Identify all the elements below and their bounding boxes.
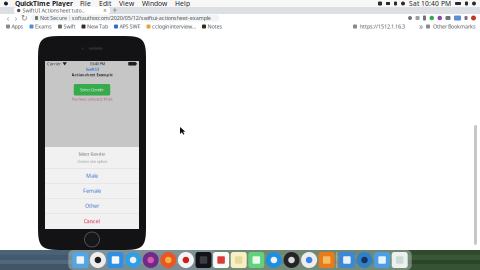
button[interactable]: Window [138, 0, 171, 7]
button[interactable]: Trash [392, 251, 408, 269]
staticText: Apps [11, 23, 23, 30]
button[interactable]: New tab [110, 7, 120, 14]
staticText: SwiftUI Actionsheet tuto… [22, 7, 85, 14]
button[interactable]: Downloads [339, 251, 355, 269]
staticText: Window [142, 0, 167, 8]
button[interactable]: Apple menu [0, 0, 12, 7]
staticText: Other [85, 202, 99, 209]
staticText: Exams [35, 23, 52, 30]
staticText: Sat 10:40 PM [409, 0, 451, 8]
staticText: File [80, 0, 91, 8]
staticText: View [119, 0, 134, 8]
button[interactable]: File [76, 0, 95, 7]
staticText: Help [175, 0, 190, 8]
button[interactable]: Photos [143, 251, 159, 269]
staticText: » [419, 21, 423, 32]
staticText: Edit [99, 0, 111, 8]
button[interactable]: Apps [3, 22, 26, 31]
button[interactable]: Reload [20, 14, 29, 22]
staticText: ↻ [21, 13, 28, 23]
staticText: New Tab [87, 23, 108, 30]
staticText: cclogin interview… [152, 23, 196, 30]
button[interactable]: Finder [107, 251, 123, 269]
button[interactable]: Safari [125, 251, 141, 269]
button[interactable]: Launchpad [72, 251, 88, 269]
staticText: Select Gender [80, 87, 104, 92]
button[interactable]: Notes [231, 251, 247, 269]
button[interactable]: Chrome [301, 251, 317, 269]
button[interactable]: Male [45, 168, 139, 183]
staticText: Carrier [47, 61, 61, 66]
button[interactable]: Edit [95, 0, 115, 7]
staticText: ‹ [6, 12, 9, 24]
staticText: QuickTime Player [15, 0, 73, 8]
button[interactable]: Messages [248, 251, 264, 269]
button[interactable]: System Preferences [283, 251, 299, 269]
button[interactable]: Firefox [160, 251, 176, 269]
staticText: Select Gender [78, 151, 105, 156]
button[interactable]: Notes [199, 22, 225, 31]
button[interactable]: Other [45, 198, 139, 213]
button[interactable]: Swift [55, 22, 78, 31]
button[interactable]: Select Gender [74, 84, 110, 95]
staticText: Other Bookmarks [433, 23, 476, 30]
staticText: choose one option [77, 158, 107, 164]
staticText: Actionsheet Example [71, 72, 112, 77]
staticText: You have selected: Male [71, 96, 112, 102]
staticText: Not Secure [40, 14, 67, 22]
button[interactable]: New Tab [78, 22, 111, 31]
staticText: + [112, 5, 117, 16]
button[interactable]: Back [4, 14, 12, 22]
staticText: Cancel [83, 218, 100, 225]
staticText: softauthor.com/2020/05/12/swiftui-action… [72, 14, 211, 22]
button[interactable]: QuickTime Player [12, 0, 76, 7]
button[interactable]: View [115, 0, 138, 7]
button[interactable]: Terminal [195, 251, 211, 269]
button[interactable]: Cancel [45, 213, 139, 229]
staticText: SwiftUI [85, 67, 98, 72]
button[interactable]: App Store [266, 251, 282, 269]
button[interactable]: Calendar [213, 251, 229, 269]
staticText: Male [86, 172, 98, 179]
staticText: × [103, 6, 107, 15]
button[interactable]: Not Secure [31, 14, 219, 21]
button[interactable]: Forward [12, 14, 20, 22]
button[interactable]: Help [171, 0, 194, 7]
button[interactable]: Search [356, 251, 372, 269]
staticText: Notes [207, 23, 222, 30]
button[interactable]: Sublime Text [319, 251, 335, 269]
button[interactable]: Opera [178, 251, 194, 269]
staticText: APS SWF [119, 23, 140, 30]
button[interactable]: Exams [26, 22, 55, 31]
button[interactable]: cclogin interview… [143, 22, 199, 31]
staticText: 10:40 PM [90, 61, 106, 66]
button[interactable]: APS SWF [111, 22, 143, 31]
button[interactable]: AirDrop [374, 251, 390, 269]
button[interactable]: Female [45, 183, 139, 198]
staticText: Female [83, 187, 101, 194]
staticText: https://1512.1.16.3 [360, 23, 405, 30]
staticText: › [14, 12, 17, 24]
button[interactable]: Siri [90, 251, 106, 269]
button[interactable]: SwiftUI Actionsheet tuto… [14, 7, 110, 14]
staticText: Swift [63, 23, 75, 30]
